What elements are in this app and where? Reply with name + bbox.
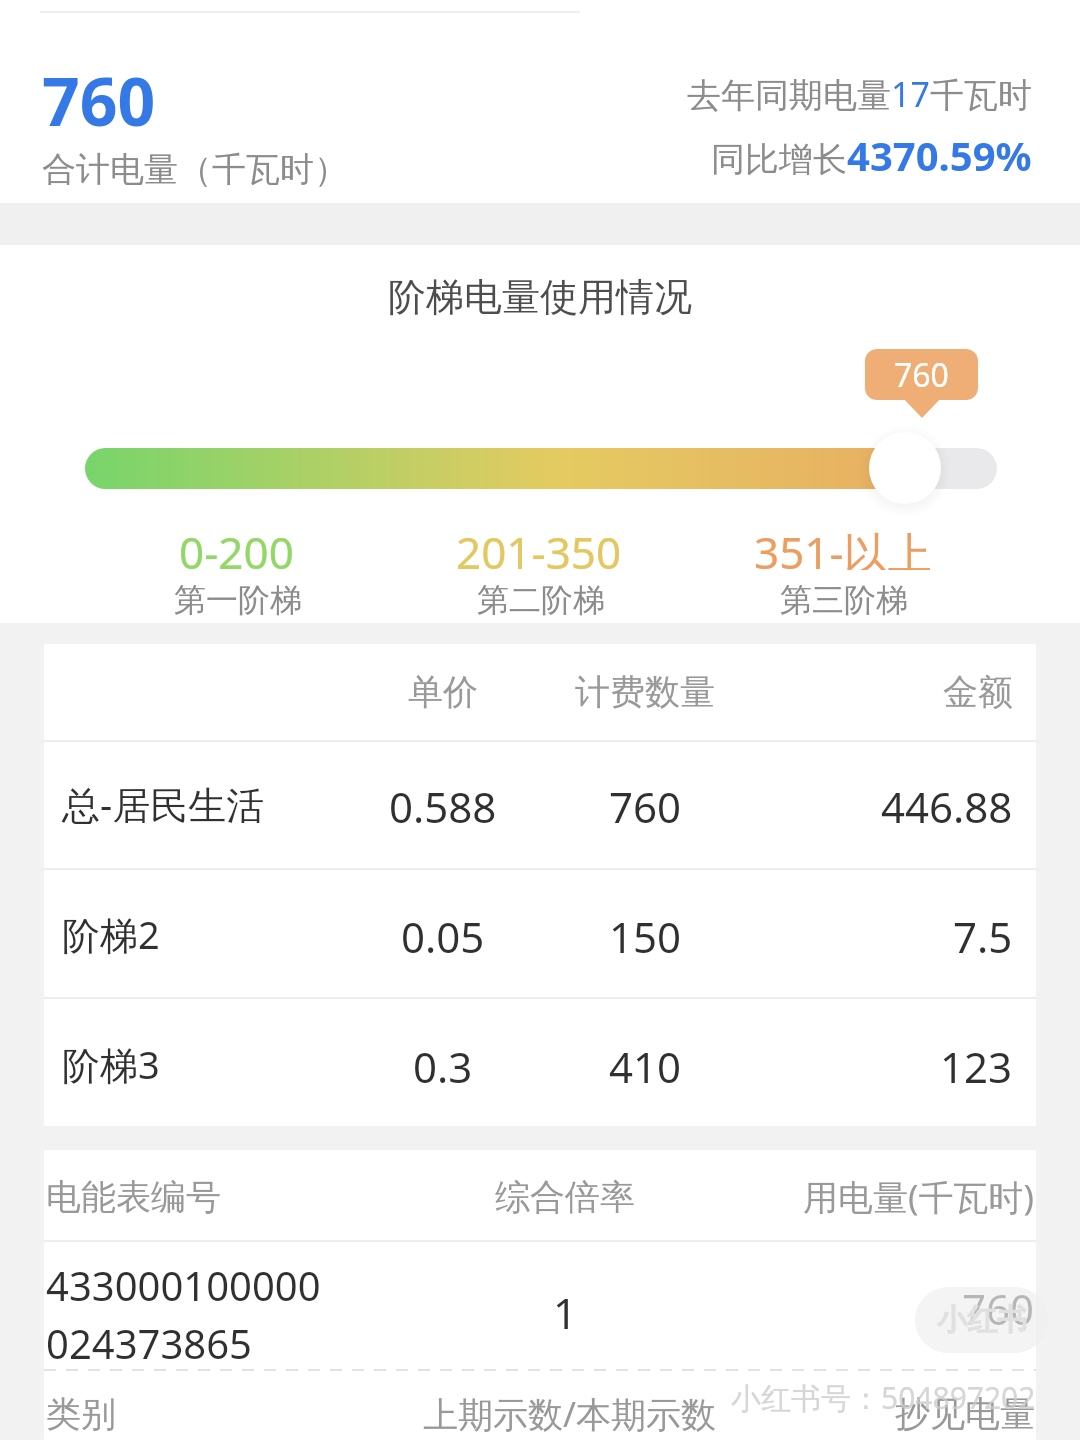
- staticText: 小红书号：504897202: [731, 1377, 1036, 1417]
- button[interactable]: 阶梯2: [62, 908, 362, 960]
- staticText: 433000100000: [46, 1258, 321, 1306]
- button[interactable]: 阶梯3: [62, 1038, 362, 1090]
- staticText: 446.88: [881, 778, 1013, 830]
- staticText: 351-以上: [754, 522, 932, 570]
- staticText: 第二阶梯: [477, 580, 605, 620]
- staticText: 760: [894, 353, 949, 397]
- staticText: 金额: [943, 670, 1013, 714]
- staticText: 抄见电量: [895, 1392, 1035, 1436]
- button[interactable]: 760: [865, 349, 978, 400]
- staticText: 单价: [408, 670, 478, 714]
- staticText: 024373865: [46, 1316, 252, 1364]
- staticText: 阶梯3: [62, 1038, 160, 1090]
- staticText: 小红书: [937, 1301, 1027, 1339]
- staticText: 上期示数/本期示数: [423, 1390, 717, 1438]
- staticText: 总-居民生活: [62, 778, 265, 830]
- button[interactable]: 总-居民生活: [62, 778, 362, 830]
- staticText: 用电量(千瓦时): [803, 1173, 1035, 1221]
- staticText: 合计电量（千瓦时）: [42, 148, 348, 191]
- staticText: 阶梯电量使用情况: [388, 273, 692, 321]
- staticText: 760: [962, 1280, 1035, 1332]
- staticText: 阶梯2: [62, 908, 160, 960]
- staticText: 0-200: [179, 522, 294, 570]
- staticText: 综合倍率: [495, 1175, 635, 1219]
- staticText: 760: [42, 55, 156, 129]
- staticText: 760: [609, 778, 682, 830]
- staticText: 0.588: [389, 778, 497, 830]
- button[interactable]: 760: [42, 55, 302, 129]
- staticText: 201-350: [456, 522, 622, 570]
- staticText: 同比增长4370.59%: [711, 128, 1032, 180]
- staticText: 0.3: [413, 1038, 473, 1090]
- staticText: 1: [553, 1284, 578, 1336]
- staticText: 150: [609, 908, 682, 960]
- staticText: 7.5: [953, 908, 1013, 960]
- staticText: 第三阶梯: [780, 580, 908, 620]
- staticText: 第一阶梯: [174, 580, 302, 620]
- staticText: 去年同期电量17千瓦时: [687, 71, 1032, 117]
- staticText: 电能表编号: [46, 1175, 221, 1219]
- staticText: 类别: [46, 1392, 116, 1436]
- staticText: 410: [609, 1038, 682, 1090]
- staticText: 0.05: [401, 908, 485, 960]
- staticText: 123: [940, 1038, 1013, 1090]
- staticText: 计费数量: [575, 670, 715, 714]
